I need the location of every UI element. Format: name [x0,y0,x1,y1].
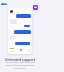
button[interactable]: Back [0,0,9,9]
button[interactable]: Messages [33,5,38,10]
staticText: Unlimited support [2,57,38,62]
staticText: Get help any time from our team of exper… [4,61,36,70]
